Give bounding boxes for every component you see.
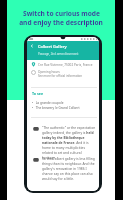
button[interactable]: Back: [28, 42, 36, 50]
staticText: Switch to curious mode: [23, 9, 100, 18]
staticText: • The brewery le Grand Colbert: [32, 106, 80, 110]
button[interactable]: Cnr Rue Vivienne, 75002 Paris, France: [31, 62, 99, 67]
button[interactable]: Opening hours: [31, 70, 99, 78]
staticText: To see: [32, 91, 44, 96]
staticText: • La grande coupole: [32, 101, 64, 105]
staticText: Colbert Gallery: [38, 44, 67, 49]
staticText: See more for official information: [38, 74, 83, 78]
staticText: So the Colbert gallery is less filling t…: [42, 156, 96, 181]
staticText: Opening hours: [38, 70, 60, 74]
staticText: "The authentic" or the expectation galle…: [42, 125, 96, 160]
staticText: Passage, 2nd arrondissement: [38, 52, 79, 56]
staticText: Cnr Rue Vivienne, 75002 Paris, France: [38, 63, 93, 67]
staticText: and enjoy the description: [19, 18, 103, 27]
